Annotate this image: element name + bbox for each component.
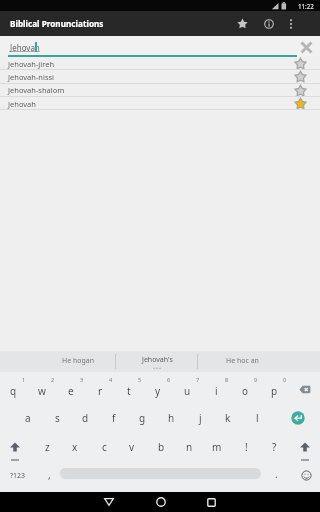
staticText: 1	[22, 376, 26, 383]
button[interactable]: ,	[4, 465, 94, 485]
staticText: q	[10, 384, 17, 398]
button[interactable]: c	[91, 433, 117, 461]
staticText: 11:22	[298, 2, 314, 10]
staticText: 7	[196, 376, 200, 383]
button[interactable]	[0, 57, 320, 70]
staticText: Biblical Pronunciations	[10, 18, 104, 29]
button[interactable]: y	[145, 377, 171, 404]
staticText: g	[139, 411, 146, 425]
staticText: x	[72, 440, 78, 454]
button[interactable]	[293, 70, 308, 83]
staticText: y	[155, 384, 161, 398]
staticText: Jehovah	[8, 99, 36, 109]
button[interactable]	[293, 97, 308, 110]
staticText: c	[102, 440, 107, 454]
button[interactable]	[2, 435, 28, 461]
button[interactable]	[115, 351, 197, 372]
button[interactable]	[287, 407, 308, 428]
button[interactable]	[231, 12, 254, 35]
button[interactable]	[197, 351, 320, 372]
staticText: j	[199, 411, 202, 425]
button[interactable]	[257, 12, 280, 35]
staticText: z	[45, 440, 50, 454]
staticText: 9	[254, 376, 258, 383]
button[interactable]: t	[116, 377, 142, 404]
button[interactable]: b	[148, 433, 174, 461]
staticText: Jehovah-nissi	[8, 72, 55, 82]
button[interactable]: s	[44, 404, 70, 432]
staticText: s	[55, 411, 60, 425]
staticText: d	[82, 411, 89, 425]
button[interactable]	[293, 84, 308, 97]
button[interactable]: !	[233, 433, 259, 461]
button[interactable]: .	[231, 464, 320, 484]
staticText: ?	[272, 440, 277, 454]
button[interactable]: g	[129, 404, 155, 432]
button[interactable]: p	[261, 377, 287, 404]
button[interactable]	[149, 492, 172, 512]
staticText: 3	[80, 376, 84, 383]
button[interactable]	[97, 492, 120, 512]
staticText: 4	[109, 376, 113, 383]
staticText: m	[212, 440, 222, 454]
button[interactable]: o	[232, 377, 258, 404]
staticText: .	[275, 467, 278, 481]
staticText: f	[112, 411, 116, 425]
button[interactable]	[280, 12, 301, 35]
button[interactable]: f	[101, 404, 127, 432]
button[interactable]	[0, 36, 320, 56]
staticText: Jehovah-shalom	[8, 85, 65, 95]
button[interactable]	[292, 435, 318, 461]
staticText: 5	[138, 376, 142, 383]
button[interactable]: i	[203, 377, 229, 404]
staticText: i	[215, 384, 218, 398]
button[interactable]	[0, 83, 320, 96]
staticText: ,	[48, 468, 51, 482]
button[interactable]: e	[58, 377, 84, 404]
button[interactable]: n	[176, 433, 202, 461]
staticText: Jehovah-jireh	[8, 59, 55, 69]
button[interactable]	[293, 57, 308, 70]
button[interactable]: r	[87, 377, 113, 404]
button[interactable]: q	[0, 377, 26, 404]
staticText: l	[256, 411, 259, 425]
staticText: 2	[51, 376, 55, 383]
button[interactable]: w	[29, 377, 55, 404]
staticText: !	[245, 440, 248, 454]
button[interactable]: x	[62, 433, 88, 461]
staticText: h	[168, 411, 175, 425]
staticText: v	[129, 440, 135, 454]
button[interactable]	[0, 97, 320, 110]
staticText: b	[158, 440, 165, 454]
button[interactable]	[295, 464, 317, 486]
button[interactable]: j	[187, 404, 213, 432]
staticText: t	[127, 384, 131, 398]
button[interactable]: h	[158, 404, 184, 432]
button[interactable]	[0, 70, 320, 83]
button[interactable]: ?123	[0, 466, 63, 486]
button[interactable]: v	[119, 433, 145, 461]
staticText: ?123	[10, 471, 26, 481]
button[interactable]	[0, 351, 115, 372]
button[interactable]	[292, 377, 318, 401]
button[interactable]	[296, 38, 317, 57]
staticText: o	[242, 384, 249, 398]
button[interactable]: m	[204, 433, 230, 461]
staticText: p	[271, 384, 278, 398]
button[interactable]: ?	[261, 433, 287, 461]
staticText: He hoc an	[226, 356, 259, 366]
button[interactable]: u	[174, 377, 200, 404]
staticText: Jehovah's	[142, 355, 173, 365]
button[interactable]: l	[244, 404, 270, 432]
button[interactable]	[200, 492, 223, 512]
staticText: n	[186, 440, 193, 454]
button[interactable]: z	[34, 433, 60, 461]
staticText: w	[38, 384, 46, 398]
staticText: Jehovah	[10, 42, 40, 53]
staticText: k	[225, 411, 231, 425]
button[interactable]: a	[15, 404, 41, 432]
button[interactable]: d	[72, 404, 98, 432]
staticText: 8	[225, 376, 229, 383]
button[interactable]: k	[215, 404, 241, 432]
